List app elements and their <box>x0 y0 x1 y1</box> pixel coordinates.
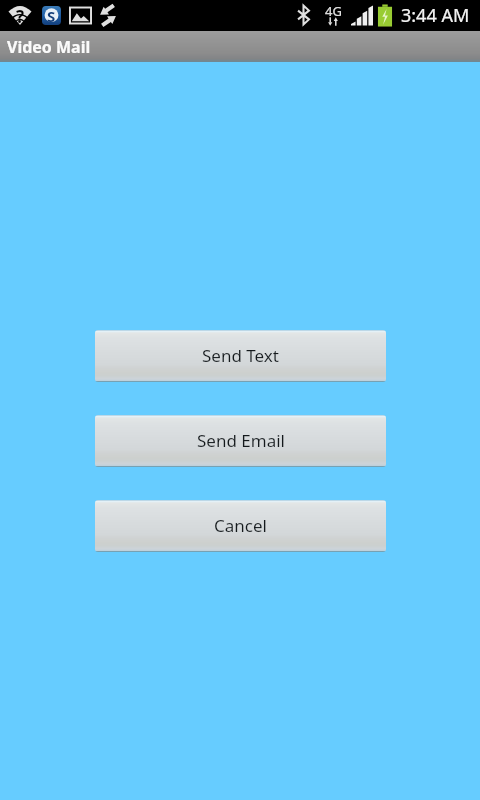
button[interactable]: Send Email <box>95 415 386 467</box>
other: Battery charging <box>377 4 393 27</box>
other: 4G data <box>324 2 342 26</box>
staticText: Cancel <box>214 514 267 537</box>
staticText: 3:44 AM <box>401 3 470 28</box>
staticText: Send Email <box>197 429 285 452</box>
other: Wi-Fi no internet <box>8 4 32 25</box>
button[interactable]: Cancel <box>95 500 386 552</box>
staticText: Send Text <box>202 344 279 367</box>
other: Signal strength <box>351 5 373 26</box>
other: Screenshot <box>69 6 92 25</box>
other: Bluetooth <box>297 5 310 25</box>
staticText: 4G <box>325 2 342 20</box>
button[interactable]: Send Text <box>95 330 386 382</box>
other: Data transfer <box>99 5 117 26</box>
other: Skype <box>41 5 62 26</box>
staticText: ? <box>16 5 25 26</box>
staticText: Video Mail <box>7 36 91 58</box>
staticText: S <box>47 6 56 26</box>
